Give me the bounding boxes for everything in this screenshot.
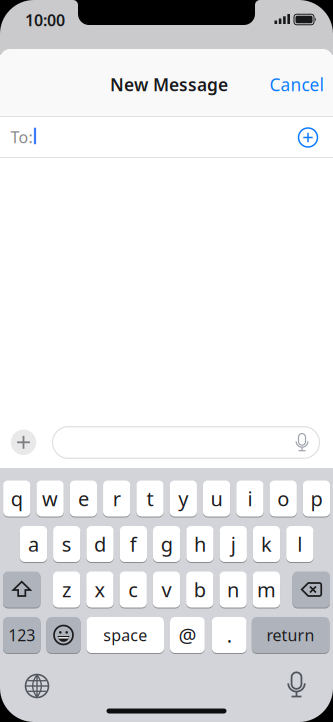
staticText: x bbox=[94, 576, 105, 603]
staticText: v bbox=[161, 576, 171, 603]
button[interactable]: Message bbox=[52, 427, 319, 458]
staticText: f bbox=[130, 531, 137, 557]
button[interactable]: Shift bbox=[3, 570, 40, 608]
button[interactable]: Delete bbox=[292, 570, 330, 608]
button[interactable]: Next Keyboard bbox=[24, 673, 49, 698]
button[interactable]: j bbox=[220, 525, 247, 563]
button[interactable]: . bbox=[212, 616, 247, 654]
staticText: b bbox=[194, 576, 206, 603]
staticText: l bbox=[297, 531, 302, 557]
button[interactable]: space bbox=[86, 616, 164, 654]
button[interactable]: a bbox=[20, 525, 47, 563]
button[interactable]: Emoji bbox=[46, 616, 80, 654]
staticText: space bbox=[103, 624, 147, 646]
staticText: m bbox=[257, 576, 276, 603]
staticText: 123 bbox=[8, 624, 35, 646]
staticText: t bbox=[146, 485, 153, 512]
button[interactable]: g bbox=[153, 525, 180, 563]
button[interactable]: c bbox=[119, 570, 147, 608]
staticText: a bbox=[28, 531, 39, 557]
button[interactable]: q bbox=[3, 479, 30, 517]
button[interactable]: l bbox=[286, 525, 313, 563]
button[interactable]: u bbox=[203, 479, 230, 517]
button[interactable]: r bbox=[103, 479, 130, 517]
staticText: w bbox=[42, 485, 58, 512]
button[interactable]: p bbox=[303, 479, 330, 517]
button[interactable]: n bbox=[219, 570, 247, 608]
staticText: g bbox=[161, 531, 173, 557]
button[interactable]: t bbox=[136, 479, 164, 517]
staticText: u bbox=[211, 485, 223, 512]
staticText: n bbox=[227, 576, 239, 603]
staticText: 10:00 bbox=[25, 9, 65, 31]
button[interactable]: e bbox=[70, 479, 97, 517]
button[interactable]: w bbox=[36, 479, 64, 517]
staticText: j bbox=[231, 531, 236, 557]
button[interactable]: i bbox=[236, 479, 263, 517]
button[interactable]: b bbox=[186, 570, 213, 608]
staticText: c bbox=[128, 576, 138, 603]
button[interactable]: 123 bbox=[3, 616, 40, 654]
staticText: i bbox=[247, 485, 252, 512]
staticText: . bbox=[227, 622, 232, 648]
button[interactable]: s bbox=[53, 525, 80, 563]
button[interactable]: h bbox=[186, 525, 214, 563]
button[interactable]: @ bbox=[170, 616, 205, 654]
button[interactable]: f bbox=[120, 525, 147, 563]
button[interactable]: y bbox=[170, 479, 197, 517]
staticText: e bbox=[78, 485, 89, 512]
staticText: New Message bbox=[110, 73, 228, 96]
button[interactable]: Attach bbox=[11, 430, 36, 455]
button[interactable]: return bbox=[252, 616, 329, 654]
button[interactable]: v bbox=[153, 570, 180, 608]
staticText: @ bbox=[178, 622, 196, 648]
staticText: o bbox=[277, 485, 289, 512]
button[interactable]: To bbox=[0, 117, 333, 157]
staticText: r bbox=[113, 485, 121, 512]
staticText: q bbox=[11, 485, 23, 512]
button[interactable]: m bbox=[253, 570, 280, 608]
staticText: return bbox=[267, 624, 315, 646]
button[interactable]: x bbox=[86, 570, 113, 608]
button[interactable]: k bbox=[253, 525, 280, 563]
button[interactable]: Add Contact bbox=[298, 128, 317, 147]
staticText: d bbox=[94, 531, 106, 557]
staticText: k bbox=[261, 531, 272, 557]
button[interactable]: Cancel bbox=[269, 73, 323, 96]
staticText: h bbox=[194, 531, 206, 557]
staticText: Cancel bbox=[269, 73, 323, 96]
button[interactable]: o bbox=[270, 479, 297, 517]
staticText: p bbox=[310, 485, 322, 512]
button[interactable]: d bbox=[86, 525, 114, 563]
button[interactable]: z bbox=[53, 570, 80, 608]
staticText: z bbox=[62, 576, 71, 603]
button[interactable]: Dictate bbox=[292, 432, 312, 453]
staticText: y bbox=[178, 485, 188, 512]
staticText: To: bbox=[10, 126, 32, 147]
button[interactable]: Dictation bbox=[283, 671, 310, 699]
staticText: s bbox=[62, 531, 72, 557]
